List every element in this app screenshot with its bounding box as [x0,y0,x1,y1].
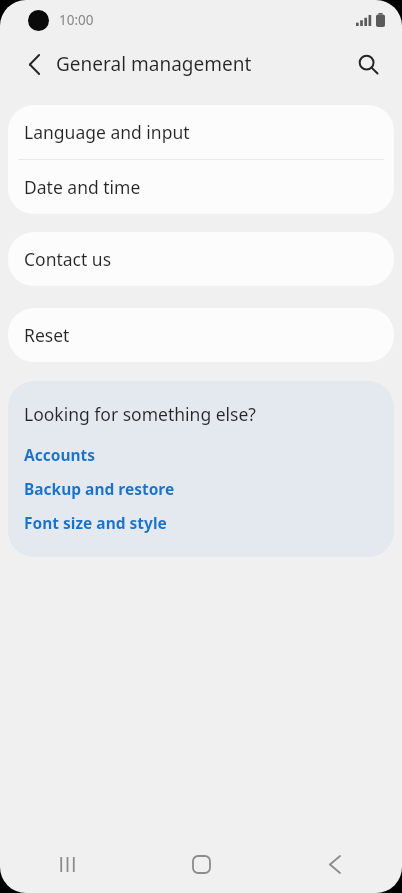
button[interactable]: Font size and style [24,512,167,533]
staticText: General management [56,51,252,77]
button[interactable]: Search [347,43,389,85]
staticText: Backup and restore [24,478,175,499]
staticText: Looking for something else? [24,402,256,426]
staticText: Reset [24,323,70,347]
staticText: Accounts [24,444,96,465]
button[interactable]: Reset [8,308,394,362]
button[interactable]: Contact us [8,232,394,286]
staticText: Date and time [24,175,141,199]
staticText: Contact us [24,247,112,271]
button[interactable]: Backup and restore [24,478,175,499]
staticText: Font size and style [24,512,167,533]
staticText: 10:00 [59,11,94,29]
button[interactable]: Back [268,835,402,893]
button[interactable]: Recent apps [0,835,134,893]
button[interactable]: Back [14,44,54,84]
button[interactable]: Date and time [8,160,394,214]
button[interactable]: Language and input [8,105,394,159]
staticText: Language and input [24,120,190,144]
button[interactable]: Accounts [24,444,96,465]
button[interactable]: Home [134,835,268,893]
